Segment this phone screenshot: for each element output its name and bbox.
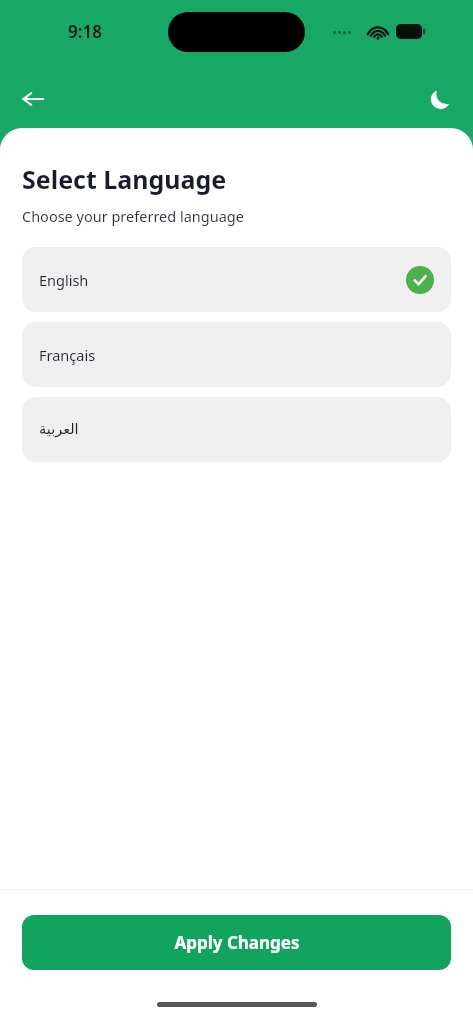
staticText: Select Language <box>22 162 227 196</box>
staticText: English <box>39 270 89 290</box>
button[interactable]: Dark mode <box>421 80 459 118</box>
staticText: Apply Changes <box>174 931 300 954</box>
staticText: العربية <box>39 421 79 438</box>
button[interactable]: English <box>22 247 451 312</box>
button[interactable]: Français <box>22 322 451 387</box>
staticText: 9:18 <box>68 20 102 43</box>
staticText: Français <box>39 345 96 365</box>
button[interactable]: Back <box>14 80 52 118</box>
staticText: Choose your preferred language <box>22 206 244 226</box>
button[interactable]: العربية <box>22 397 451 462</box>
button[interactable]: Apply Changes <box>22 915 451 970</box>
